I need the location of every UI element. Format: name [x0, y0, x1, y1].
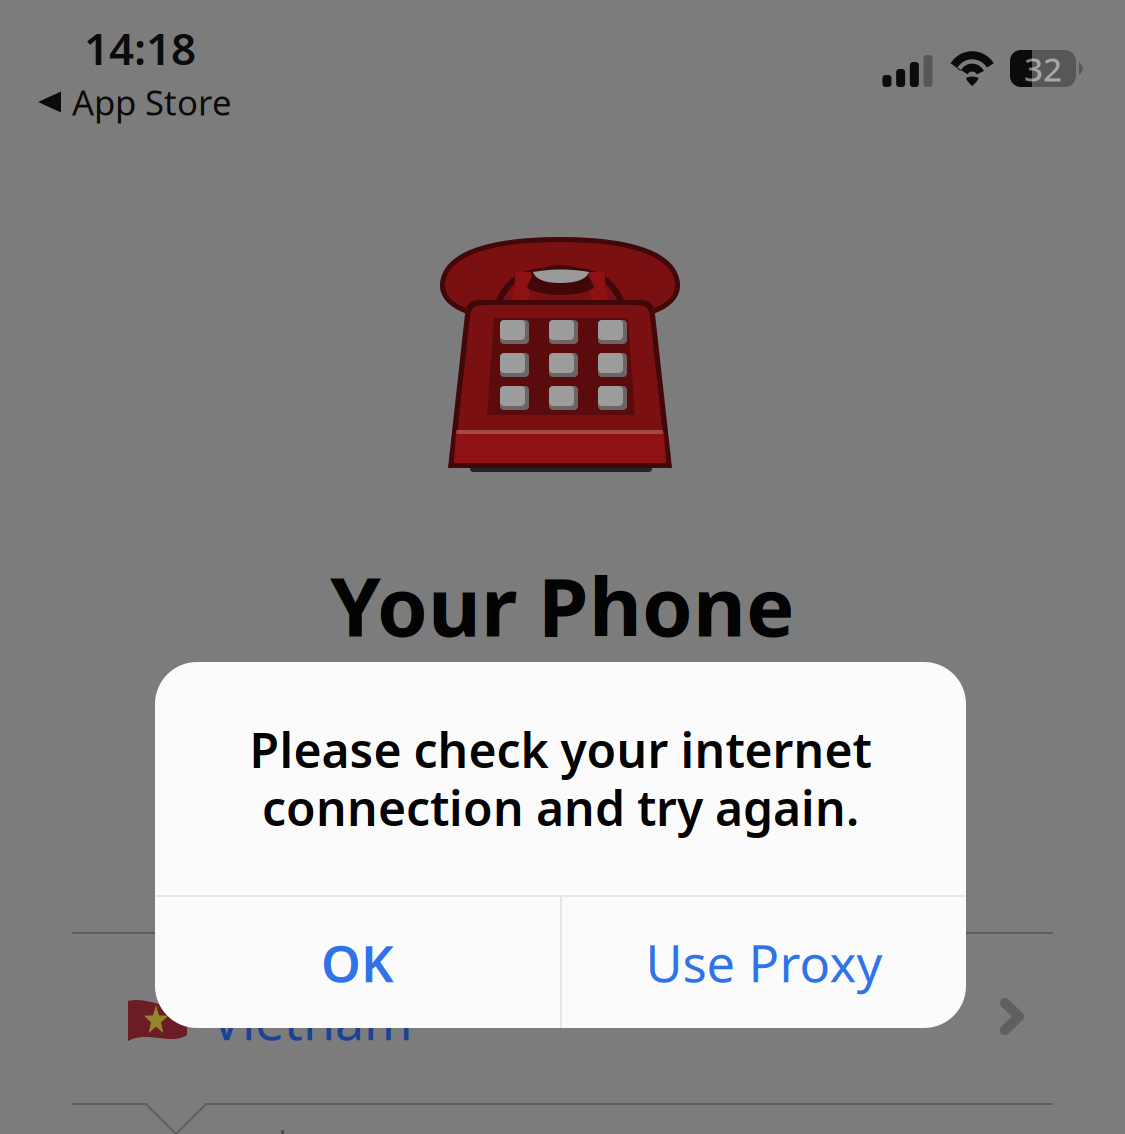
staticText: 14:18 [84, 19, 196, 77]
staticText: Your Phone [330, 551, 795, 659]
staticText: App Store [72, 79, 232, 125]
button[interactable]: Vietnam [72, 934, 1053, 1100]
button[interactable]: Use Proxy [562, 897, 966, 1028]
staticText: 32 [1024, 46, 1062, 91]
staticText: Please check your internet [249, 718, 871, 781]
staticText: Use Proxy [645, 929, 882, 996]
staticText: Vietnam [211, 985, 413, 1055]
button[interactable]: Phone number [72, 1093, 1053, 1134]
staticText: connection and try again. [262, 776, 859, 839]
button[interactable]: App Store [38, 82, 232, 122]
button[interactable]: OK [155, 897, 560, 1028]
staticText: OK [321, 929, 394, 996]
